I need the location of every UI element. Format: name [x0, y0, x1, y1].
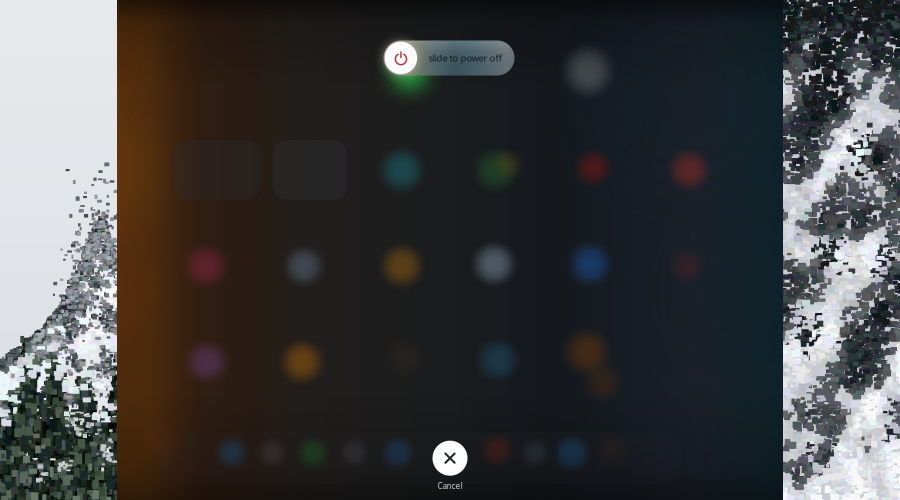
- button[interactable]: Cancel: [432, 441, 467, 491]
- staticText: Cancel: [437, 481, 462, 491]
- button[interactable]: slide to power off: [383, 40, 514, 75]
- staticText: slide to power off: [428, 52, 501, 64]
